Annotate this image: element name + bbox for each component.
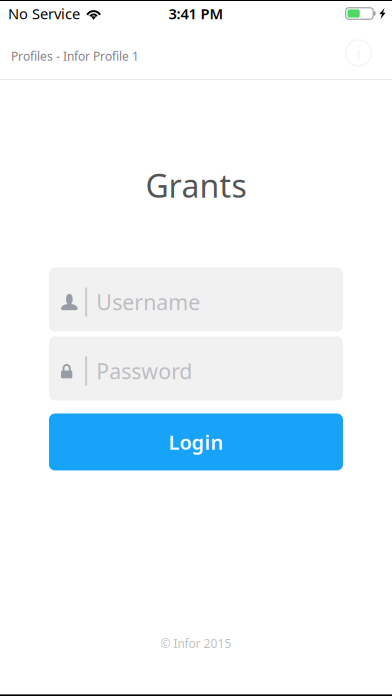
staticText: Login	[168, 429, 223, 455]
button[interactable]: Profiles - Infor Profile 1	[0, 26, 190, 80]
button[interactable]: Login	[49, 413, 343, 470]
button[interactable]: Info	[345, 26, 392, 80]
staticText: No Service	[8, 4, 80, 23]
staticText: Password	[96, 357, 192, 385]
button[interactable]: Password	[49, 336, 343, 400]
staticText: 3:41 PM	[168, 4, 223, 23]
staticText: © Infor 2015	[160, 635, 231, 651]
staticText: Profiles - Infor Profile 1	[11, 48, 139, 64]
button[interactable]: Username	[49, 267, 343, 331]
staticText: Grants	[145, 164, 246, 206]
staticText: Username	[96, 288, 200, 316]
